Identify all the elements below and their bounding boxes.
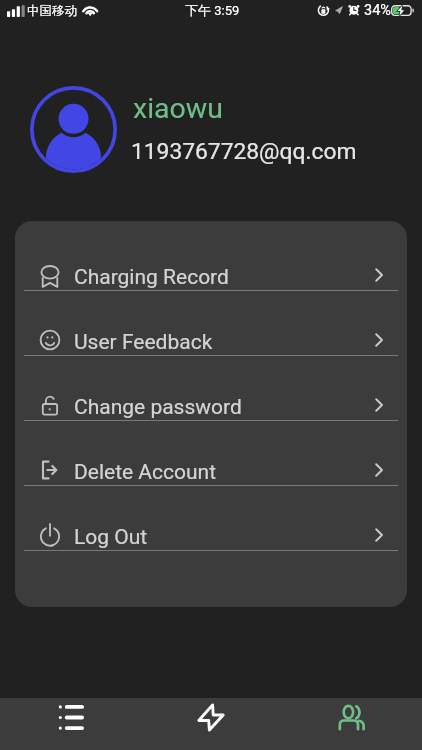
button[interactable]: Delete Account <box>15 421 407 486</box>
staticText: Charging Record <box>74 265 229 290</box>
staticText: 中国移动 <box>27 3 77 19</box>
staticText: Change password <box>74 395 242 420</box>
staticText: User Feedback <box>74 330 213 355</box>
staticText: 1193767728@qq.com <box>131 138 357 165</box>
button[interactable]: Charging <box>141 698 281 750</box>
button[interactable]: Records list <box>0 698 141 750</box>
button[interactable]: Log Out <box>15 486 407 551</box>
staticText: xiaowu <box>133 92 223 125</box>
button[interactable]: Change password <box>15 356 407 421</box>
staticText: 下午 3:59 <box>185 2 240 18</box>
button[interactable]: Charging Record <box>15 226 407 291</box>
button[interactable]: User Feedback <box>15 291 407 356</box>
staticText: Delete Account <box>74 460 217 485</box>
staticText: Log Out <box>74 525 148 550</box>
staticText: 34% <box>364 2 391 19</box>
button[interactable]: Profile <box>281 698 422 750</box>
